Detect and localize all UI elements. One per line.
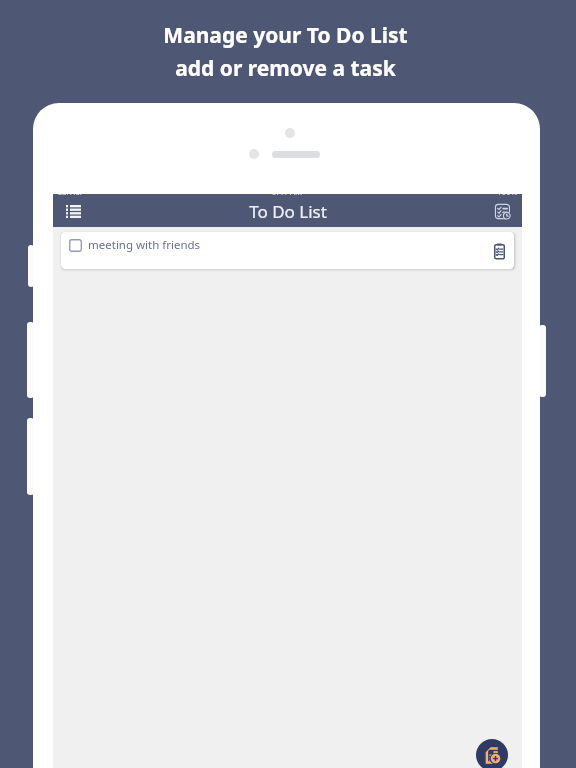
staticText: add or remove a task [175, 54, 396, 83]
staticText: To Do List [249, 200, 327, 223]
staticText: 100% [497, 194, 518, 196]
button[interactable]: Menu [53, 196, 93, 227]
staticText: meeting with friends [88, 237, 201, 253]
staticText: 9:41 AM [272, 194, 303, 196]
button[interactable]: Add task [476, 739, 508, 768]
button[interactable]: Task history [484, 196, 522, 227]
button[interactable]: meeting with friends [61, 232, 514, 269]
staticText: Carrier [57, 194, 84, 196]
staticText: Manage your To Do List [163, 21, 408, 50]
button[interactable]: Task notes [487, 239, 511, 263]
